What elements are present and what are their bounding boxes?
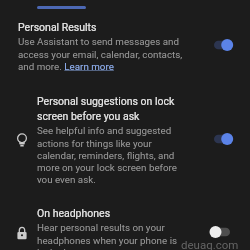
button[interactable]: Personal Results, on — [208, 37, 234, 53]
button[interactable]: Personal suggestions on lock screen befo… — [0, 91, 250, 179]
staticText: deuaq.com — [181, 238, 239, 250]
button[interactable]: On headphones — [0, 203, 250, 250]
staticText: Personal Results — [18, 21, 97, 33]
staticText: See helpful info and suggested actions f… — [37, 125, 189, 183]
staticText: Hear personal results on your headphones… — [37, 222, 189, 250]
staticText: On headphones — [37, 207, 111, 219]
staticText: Use Assistant to send messages and acces… — [18, 36, 190, 72]
button[interactable]: Personal Results — [0, 16, 250, 78]
button[interactable]: On headphones, off — [209, 224, 235, 240]
staticText: Personal suggestions on lock screen befo… — [37, 95, 189, 122]
button[interactable]: Personal suggestions, on — [208, 131, 234, 147]
